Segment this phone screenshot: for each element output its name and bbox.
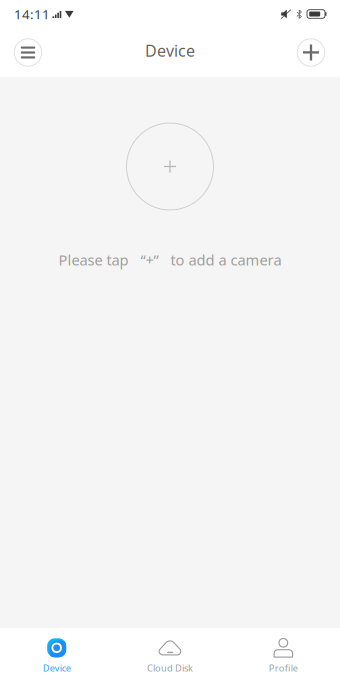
- button[interactable]: Add device: [289, 30, 333, 74]
- staticText: Device: [145, 40, 195, 61]
- staticText: 14:11: [14, 5, 50, 23]
- button[interactable]: Add a camera: [126, 123, 213, 210]
- button[interactable]: Device: [0, 628, 113, 680]
- staticText: Profile: [269, 662, 298, 674]
- staticText: Please tap “+” to add a camera: [58, 250, 281, 269]
- button[interactable]: Cloud Disk: [113, 628, 227, 680]
- button[interactable]: Menu: [6, 30, 50, 74]
- staticText: Cloud Disk: [147, 662, 193, 674]
- button[interactable]: Profile: [227, 628, 340, 680]
- staticText: Device: [43, 662, 71, 674]
